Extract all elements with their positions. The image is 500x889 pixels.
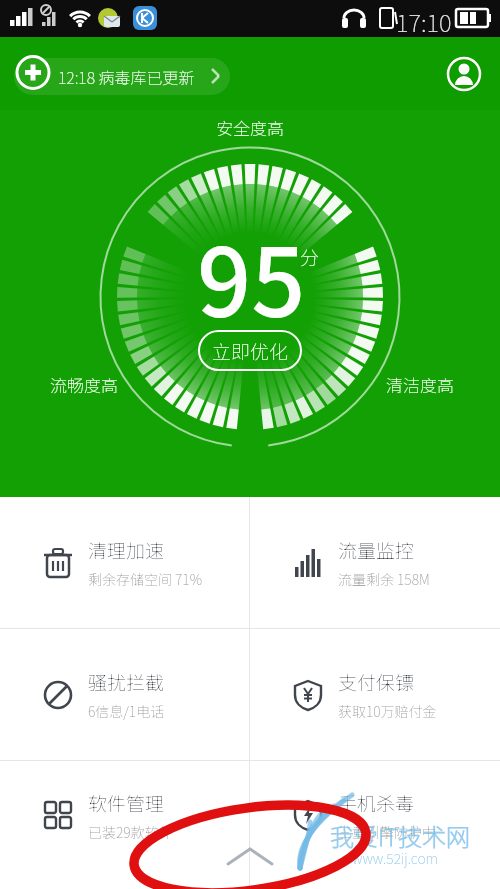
staticText: 我爱IT技术网 [330,818,470,853]
staticText: 软件管理 [88,789,165,817]
button[interactable]: 立即优化 [198,330,302,371]
staticText: 清理加速 [88,536,165,564]
staticText: 清洁度高 [386,372,454,397]
staticText: 17:10 [396,4,452,39]
staticText: www.52ij.com [352,848,439,868]
button[interactable]: 清理加速 [0,497,249,628]
staticText: 剩余存储空间 71% [88,569,202,589]
button[interactable] [456,52,500,96]
staticText: 95 [197,207,306,345]
staticText: 三重引擎防护中 [338,822,436,842]
button[interactable]: 12:18 病毒库已更新 [14,58,230,95]
staticText: 流畅度高 [50,372,118,397]
button[interactable]: 骚扰拦截 [0,629,249,760]
staticText: 流量剩余 158M [338,569,430,589]
staticText: 6信息/1电话 [88,701,165,721]
staticText: 分 [300,243,320,271]
staticText: 支付保镖 [338,668,415,696]
staticText: 手机杀毒 [338,789,415,817]
staticText: 获取10万赔付金 [338,701,437,721]
staticText: 立即优化 [212,337,289,365]
staticText: 安全度高 [216,115,284,140]
staticText: 骚扰拦截 [88,668,165,696]
staticText: 已装29款软件 [88,822,173,842]
staticText: 12:18 病毒库已更新 [58,65,195,88]
button[interactable]: 支付保镖 [250,629,500,760]
button[interactable]: 流量监控 [250,497,500,628]
button[interactable] [190,845,310,889]
staticText: 流量监控 [338,536,415,564]
button[interactable]: 软件管理 [0,751,249,879]
button[interactable]: 手机杀毒 [250,751,500,879]
